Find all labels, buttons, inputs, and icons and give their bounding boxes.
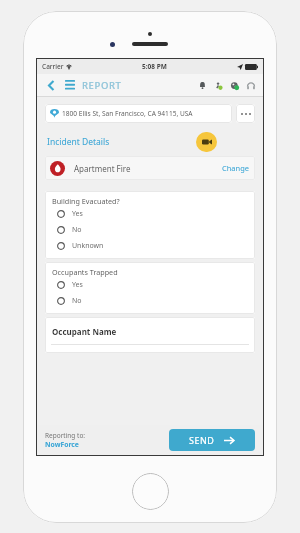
button[interactable]: Menu	[62, 77, 78, 93]
staticText: REPORT	[82, 79, 122, 92]
button[interactable]: Unknown	[52, 238, 255, 254]
staticText: Incident Details	[47, 136, 110, 148]
staticText: No	[72, 296, 82, 306]
button[interactable]: Yes	[52, 277, 255, 293]
button[interactable]: Yes	[52, 206, 255, 222]
button[interactable]: No	[52, 293, 255, 309]
button[interactable]: Map	[228, 79, 241, 92]
button[interactable]: Support	[244, 79, 257, 92]
staticText: 1800 Ellis St, San Francisco, CA 94115, …	[62, 109, 193, 118]
button[interactable]: SEND	[169, 429, 255, 451]
staticText: Building Evacuated?	[52, 196, 120, 206]
button[interactable]: Back	[43, 77, 59, 93]
button[interactable]: 1800 Ellis St, San Francisco, CA 94115, …	[45, 104, 232, 123]
button[interactable]: More options	[236, 104, 255, 123]
staticText: No	[72, 225, 82, 235]
staticText: Occupant Name	[52, 326, 117, 337]
staticText: NowForce	[45, 440, 79, 449]
staticText: Change	[222, 163, 250, 173]
staticText: Reporting to:	[45, 431, 86, 440]
staticText: Apartment Fire	[74, 163, 131, 174]
button[interactable]: No	[52, 222, 255, 238]
button[interactable]: Alerts	[196, 79, 209, 92]
staticText: SEND	[189, 434, 215, 446]
staticText: Occupants Trapped	[52, 267, 118, 277]
staticText: Unknown	[72, 241, 104, 251]
button[interactable]: Apartment Fire	[45, 156, 255, 180]
staticText: Carrier	[42, 62, 64, 71]
button[interactable]: Responders	[212, 79, 225, 92]
button[interactable]: Record video	[196, 132, 217, 152]
staticText: 5:08 PM	[142, 62, 167, 71]
staticText: Yes	[72, 209, 83, 219]
staticText: Yes	[72, 280, 83, 290]
